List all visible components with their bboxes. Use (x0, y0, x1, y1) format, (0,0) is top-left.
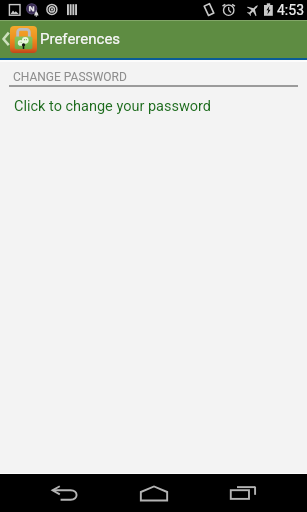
button[interactable]: Click to change your password (0, 87, 307, 123)
staticText: Click to change your password (14, 98, 212, 115)
button[interactable]: Recent apps (211, 474, 275, 512)
staticText: Preferences (40, 30, 121, 48)
button[interactable]: Navigate up (0, 20, 307, 58)
button[interactable]: Back (33, 474, 97, 512)
staticText: 4:53 (277, 2, 304, 18)
staticText: CHANGE PASSWORD (13, 70, 127, 84)
button[interactable]: Home (122, 474, 186, 512)
